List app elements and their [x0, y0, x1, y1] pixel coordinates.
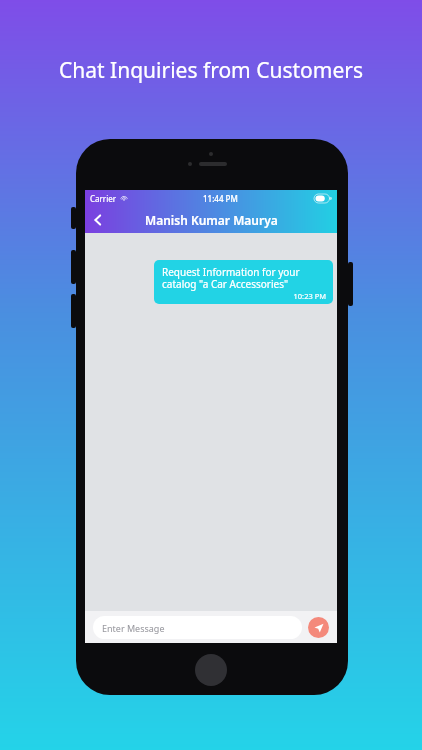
- button[interactable]: Back: [85, 207, 111, 233]
- button[interactable]: Send: [308, 617, 329, 638]
- staticText: 10:23 PM: [162, 291, 326, 301]
- staticText: Chat Inquiries from Customers: [12, 56, 410, 85]
- button[interactable]: Enter Message: [93, 616, 302, 639]
- staticText: Carrier: [90, 193, 117, 204]
- button[interactable]: Request Information for your catalog "a …: [154, 260, 333, 304]
- staticText: Manish Kumar Maurya: [145, 212, 278, 228]
- staticText: Request Information for your catalog "a …: [162, 265, 300, 291]
- staticText: 11:44 PM: [203, 193, 238, 204]
- staticText: Enter Message: [102, 622, 165, 634]
